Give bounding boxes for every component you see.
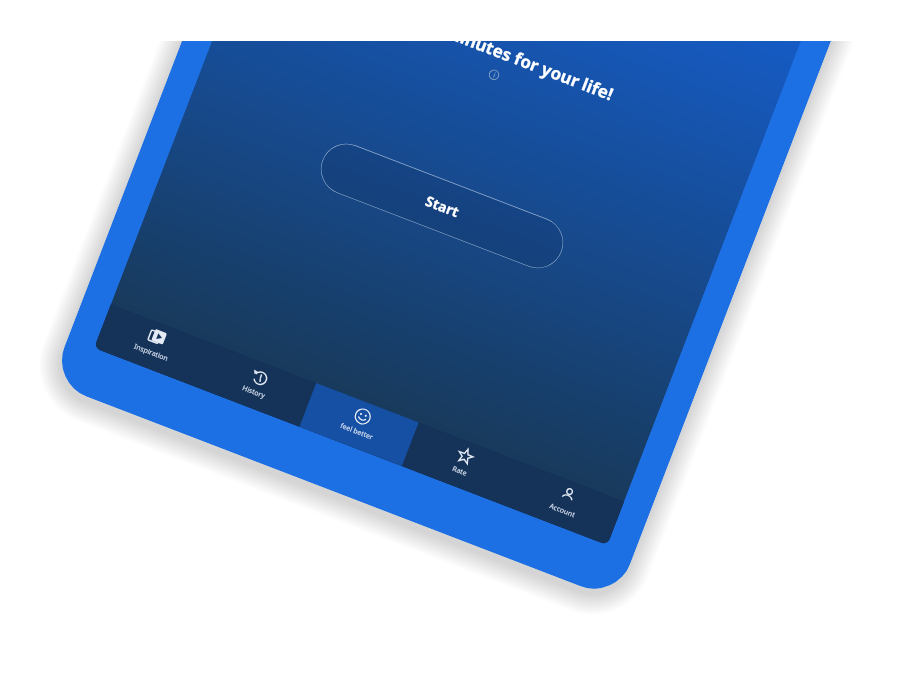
button[interactable]: Start (313, 136, 571, 276)
staticText: Rate (451, 464, 468, 479)
staticText: History (241, 383, 267, 401)
button[interactable]: Account (505, 462, 624, 545)
staticText: Start (423, 191, 462, 221)
staticText: i (492, 70, 497, 80)
button[interactable]: Rate (402, 422, 521, 506)
staticText: Inspiration (132, 342, 170, 364)
staticText: Take 3 minutes for your life! (254, 0, 750, 156)
button[interactable]: History (197, 344, 316, 427)
button[interactable]: feel better (299, 383, 419, 466)
button[interactable]: Info (487, 68, 501, 82)
staticText: feel better (339, 421, 375, 443)
staticText: Account (548, 501, 577, 520)
button[interactable]: Inspiration (94, 304, 213, 387)
